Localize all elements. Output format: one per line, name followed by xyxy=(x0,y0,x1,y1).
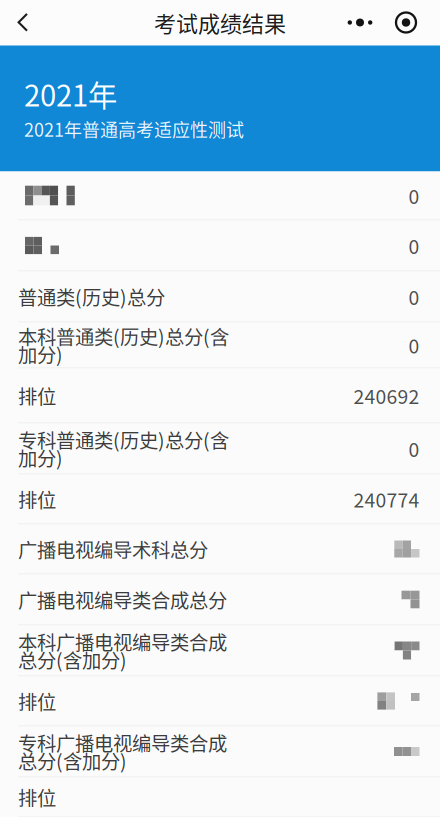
button[interactable]: 普通类(历史)总分 xyxy=(0,271,440,322)
button[interactable]: More options xyxy=(336,0,384,45)
staticText: 总分(含加分) xyxy=(18,746,127,774)
button[interactable]: Close xyxy=(384,0,428,45)
staticText: 240774 xyxy=(353,485,419,513)
button[interactable]: 专科广播电视编导类合成 xyxy=(0,726,440,777)
button[interactable]: 排位 xyxy=(0,676,440,726)
staticText: 加分) xyxy=(18,340,63,368)
staticText: 排位 xyxy=(18,381,56,409)
staticText: 专科普通类(历史)总分(含 xyxy=(18,425,229,453)
button[interactable]: 本科广播电视编导类合成 xyxy=(0,625,440,676)
staticText: 2021年普通高考适应性测试 xyxy=(24,116,244,142)
button[interactable]: 排位 xyxy=(0,474,440,524)
staticText: 排位 xyxy=(18,687,56,715)
staticText: 广播电视编导术科总分 xyxy=(18,535,208,563)
staticText: 0 xyxy=(408,434,419,462)
staticText: 0 xyxy=(408,231,419,259)
staticText: 240692 xyxy=(353,381,419,409)
button[interactable]: 广播电视编导术科总分 xyxy=(0,524,440,574)
staticText: 本科广播电视编导类合成 xyxy=(18,627,227,655)
staticText: 0 xyxy=(408,282,419,310)
button[interactable]: 排位 xyxy=(0,777,440,817)
staticText: 排位 xyxy=(18,783,56,811)
button[interactable]: Back xyxy=(0,0,46,45)
staticText: 普通类(历史)总分 xyxy=(18,282,165,310)
staticText: 0 xyxy=(408,331,419,359)
staticText: 2021年 xyxy=(24,72,117,115)
staticText: 专科广播电视编导类合成 xyxy=(18,728,227,756)
staticText: 考试成绩结果 xyxy=(154,7,286,38)
staticText: 广播电视编导类合成总分 xyxy=(18,585,227,613)
staticText: 总分(含加分) xyxy=(18,645,127,673)
staticText: 本科普通类(历史)总分(含 xyxy=(18,322,229,350)
button[interactable]: 本科普通类(历史)总分(含 xyxy=(0,322,440,368)
button[interactable]: 专科普通类(历史)总分(含 xyxy=(0,423,440,474)
staticText: 排位 xyxy=(18,485,56,513)
button[interactable]: 0 xyxy=(0,171,440,220)
button[interactable]: 0 xyxy=(0,220,440,271)
button[interactable]: 排位 xyxy=(0,368,440,423)
staticText: 0 xyxy=(408,181,419,209)
button[interactable]: 广播电视编导类合成总分 xyxy=(0,574,440,625)
staticText: 加分) xyxy=(18,443,63,471)
